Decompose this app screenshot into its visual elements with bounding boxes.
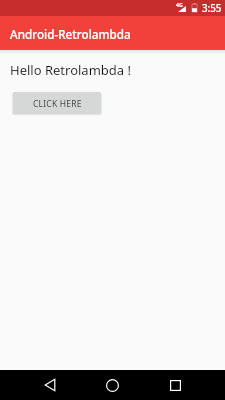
button[interactable]: Home [96,370,129,400]
staticText: CLICK HERE [33,98,82,110]
staticText: 3:55 [202,2,222,15]
button[interactable]: Back [34,370,66,400]
button[interactable]: Recent apps [159,370,191,400]
staticText: 4G [176,1,183,8]
button[interactable]: CLICK HERE [13,92,101,114]
staticText: Hello Retrolambda ! [10,61,131,79]
staticText: Android-Retrolambda [10,26,131,42]
